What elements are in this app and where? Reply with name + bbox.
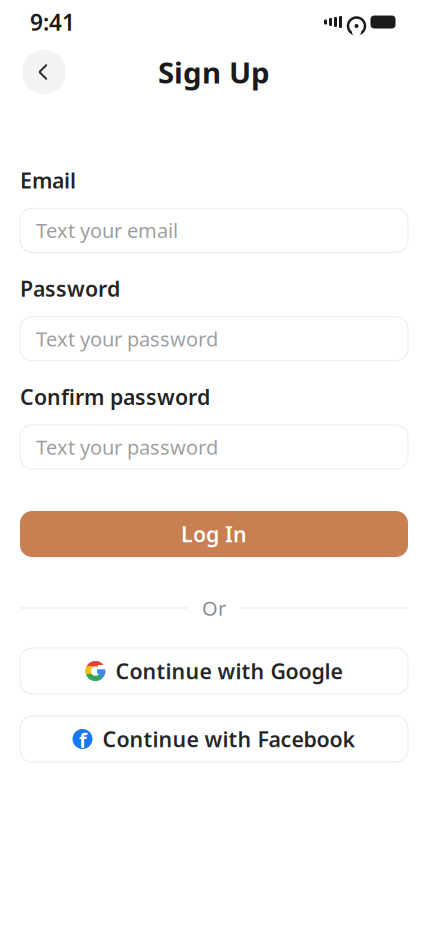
button[interactable]: Continue with Google xyxy=(20,648,408,694)
button[interactable]: f xyxy=(20,716,408,762)
button[interactable]: Back xyxy=(22,50,66,94)
staticText: Email xyxy=(20,166,76,194)
staticText: Log In xyxy=(181,520,247,548)
button[interactable]: Log In xyxy=(20,511,408,557)
staticText: f xyxy=(79,727,87,753)
staticText: Text your password xyxy=(36,434,218,460)
staticText: Continue with Google xyxy=(115,657,342,685)
staticText: Confirm password xyxy=(20,383,210,411)
staticText: Sign Up xyxy=(158,52,270,91)
staticText: Or xyxy=(202,595,226,621)
staticText: 9:41 xyxy=(30,7,75,37)
staticText: Text your email xyxy=(36,217,178,244)
staticText: Text your password xyxy=(36,325,218,352)
staticText: Password xyxy=(20,274,120,303)
staticText: Continue with Facebook xyxy=(102,725,355,753)
